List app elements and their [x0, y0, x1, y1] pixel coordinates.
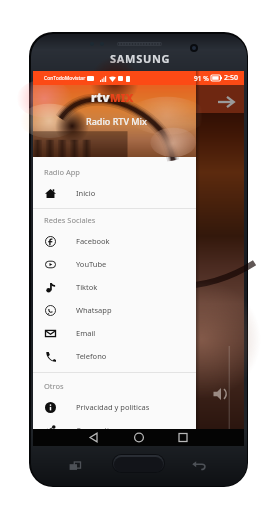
staticText: Tiktok: [76, 282, 98, 292]
staticText: Radio RTV Mix: [86, 115, 147, 127]
button[interactable]: Whatsapp: [33, 298, 196, 321]
button[interactable]: Back: [81, 429, 107, 446]
staticText: Otros: [44, 381, 64, 391]
staticText: 91 %: [194, 74, 209, 83]
button[interactable]: Volume: [211, 384, 231, 404]
staticText: Radio App: [44, 167, 80, 177]
button[interactable]: Compartir app: [33, 418, 196, 441]
button[interactable]: Home button: [112, 454, 165, 473]
button[interactable]: Inicio: [33, 181, 196, 204]
button[interactable]: Recents: [170, 429, 196, 446]
staticText: Whatsapp: [76, 305, 112, 315]
staticText: rtv: [91, 89, 110, 105]
button[interactable]: Recent apps: [66, 456, 84, 474]
staticText: YouTube: [76, 259, 107, 269]
staticText: MIX: [110, 90, 134, 105]
button[interactable]: Facebook: [33, 229, 196, 252]
button[interactable]: Privacidad y politicas: [33, 395, 196, 418]
button[interactable]: Email: [33, 321, 196, 344]
staticText: Email: [76, 328, 96, 338]
staticText: Facebook: [76, 236, 110, 246]
button[interactable]: Next: [215, 91, 237, 113]
button[interactable]: Telefono: [33, 344, 196, 367]
staticText: Privacidad y politicas: [76, 402, 150, 412]
button[interactable]: Back: [190, 456, 208, 474]
staticText: Telefono: [76, 351, 107, 361]
button[interactable]: Tiktok: [33, 275, 196, 298]
staticText: 2:50: [224, 73, 238, 83]
staticText: SAMSUNG: [110, 51, 171, 66]
staticText: Compartir app: [76, 425, 128, 435]
staticText: ConTodoMovistar: [44, 75, 86, 82]
button[interactable]: YouTube: [33, 252, 196, 275]
button[interactable]: Home: [126, 429, 152, 446]
staticText: Redes Sociales: [44, 215, 96, 225]
staticText: Inicio: [76, 188, 96, 198]
